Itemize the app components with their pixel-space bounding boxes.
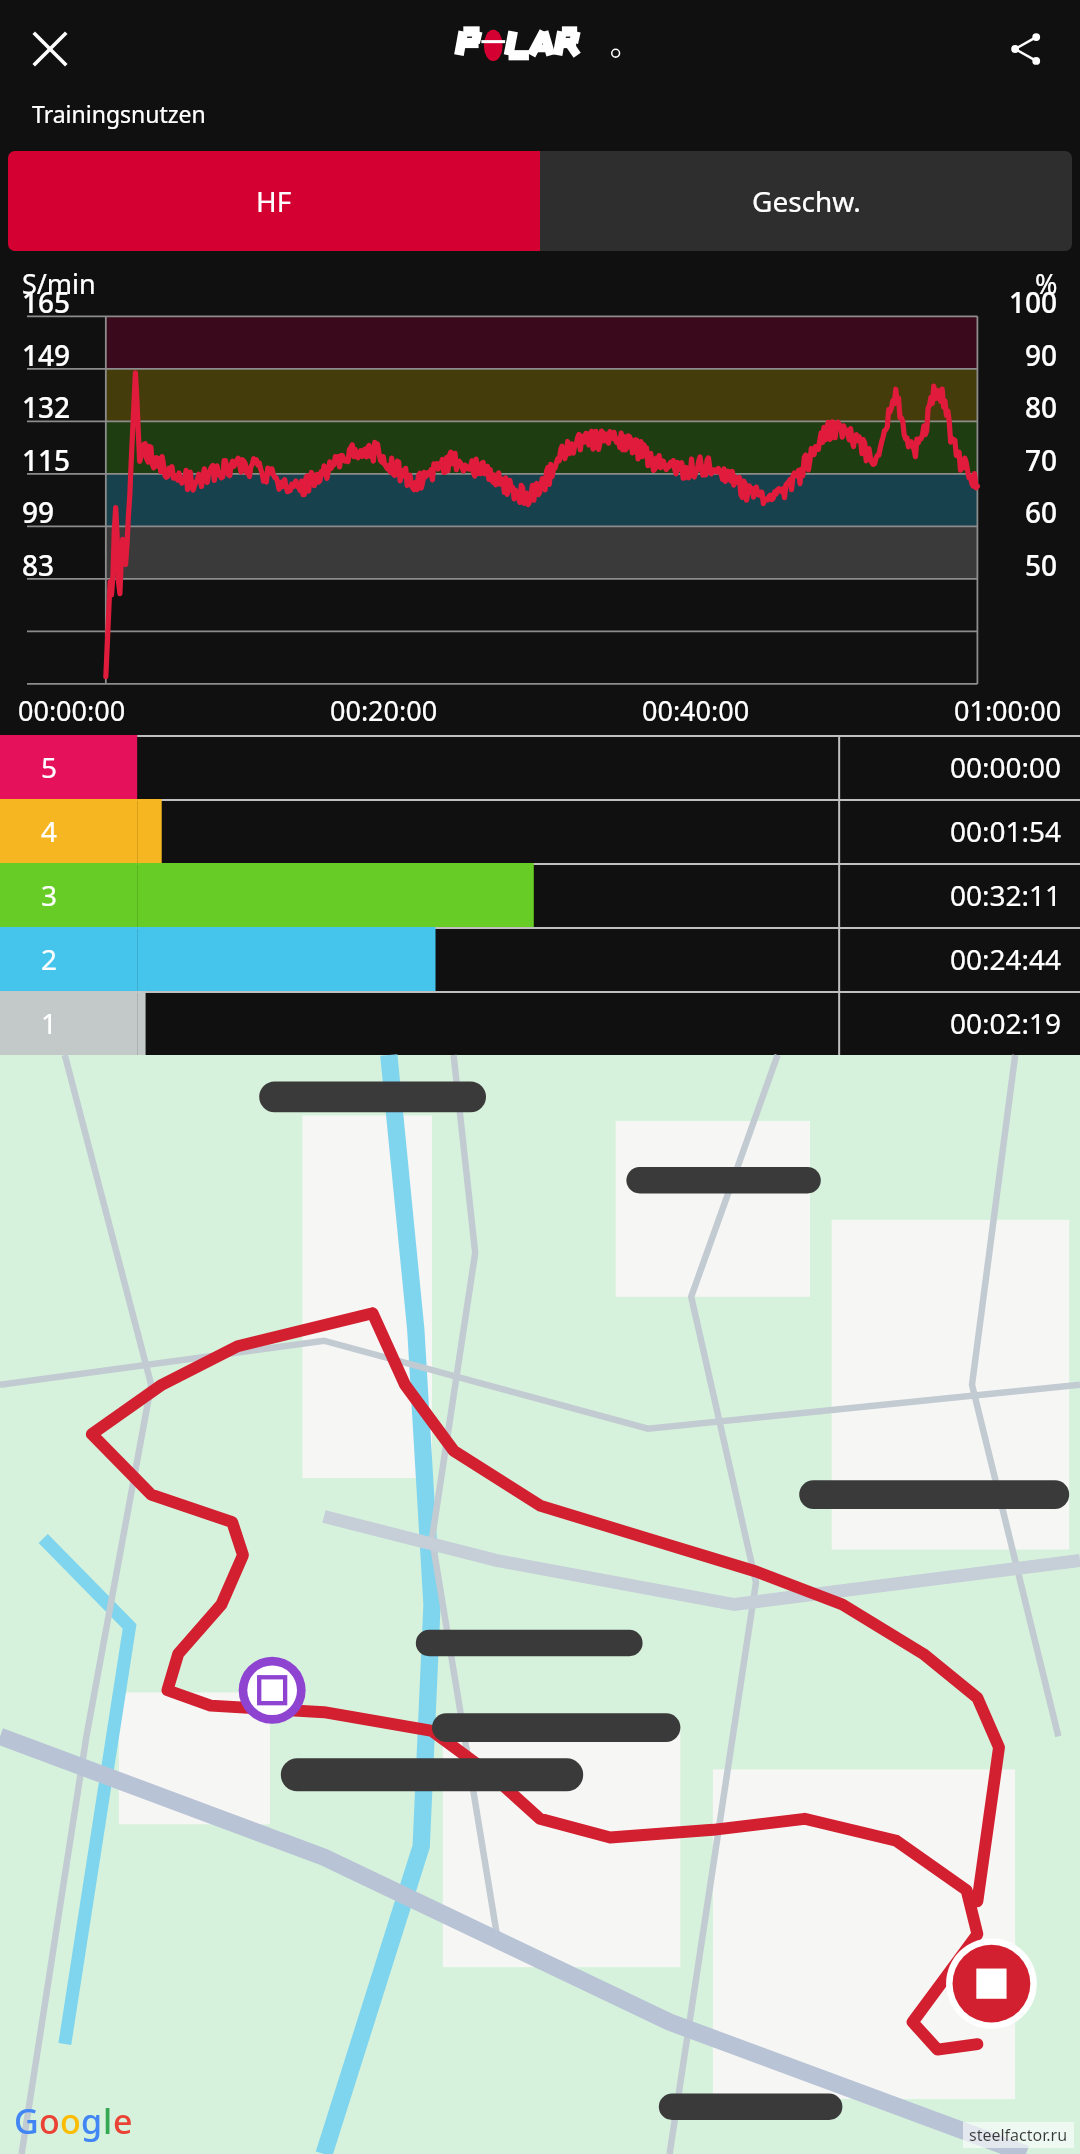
staticText: 165 <box>22 283 71 321</box>
staticText: 00:40:00 <box>642 692 750 729</box>
staticText: 132 <box>22 388 71 426</box>
staticText: 83 <box>22 546 55 584</box>
staticText: 80 <box>1025 388 1058 426</box>
staticText: 50 <box>1025 546 1058 584</box>
staticText: 90 <box>1025 336 1058 374</box>
staticText: S/min <box>22 265 96 302</box>
staticText: 4 <box>41 812 58 850</box>
button[interactable]: 3 <box>0 863 1080 927</box>
staticText: HF <box>256 182 292 220</box>
button[interactable]: HF <box>8 151 540 251</box>
button[interactable]: 4 <box>0 799 1080 863</box>
staticText: 00:02:19 <box>950 1004 1062 1042</box>
staticText: 00:00:00 <box>18 692 126 729</box>
staticText: g <box>81 2098 103 2144</box>
staticText: Trainingsnutzen <box>32 98 206 129</box>
button[interactable]: 1 <box>0 991 1080 1055</box>
staticText: 01:00:00 <box>954 692 1062 729</box>
staticText: o <box>60 2098 81 2144</box>
staticText: 2 <box>41 940 58 978</box>
staticText: 3 <box>41 876 58 914</box>
button[interactable]: Share <box>990 13 1062 85</box>
staticText: 149 <box>22 336 71 374</box>
button[interactable]: 2 <box>0 927 1080 991</box>
staticText: 70 <box>1025 441 1058 479</box>
staticText: 00:20:00 <box>330 692 438 729</box>
staticText: 00:00:00 <box>950 748 1062 786</box>
button[interactable]: G <box>0 1055 1080 2154</box>
staticText: 60 <box>1025 493 1058 531</box>
staticText: 00:24:44 <box>950 940 1062 978</box>
staticText: 00:01:54 <box>950 812 1062 850</box>
staticText: G <box>14 2098 39 2144</box>
staticText: e <box>113 2098 133 2144</box>
staticText: o <box>39 2098 60 2144</box>
staticText: Geschw. <box>752 182 861 220</box>
staticText: 115 <box>22 441 71 479</box>
staticText: 5 <box>41 748 58 786</box>
button[interactable]: Geschw. <box>540 151 1072 251</box>
button[interactable]: 5 <box>0 735 1080 799</box>
staticText: 99 <box>22 493 55 531</box>
staticText: 1 <box>41 1004 58 1042</box>
staticText: % <box>1035 265 1058 302</box>
staticText: steelfactor.ru <box>969 2124 1068 2146</box>
button[interactable]: Close <box>14 13 86 85</box>
staticText: l <box>103 2098 113 2144</box>
staticText: 00:32:11 <box>950 876 1062 914</box>
staticText: 100 <box>1009 283 1058 321</box>
